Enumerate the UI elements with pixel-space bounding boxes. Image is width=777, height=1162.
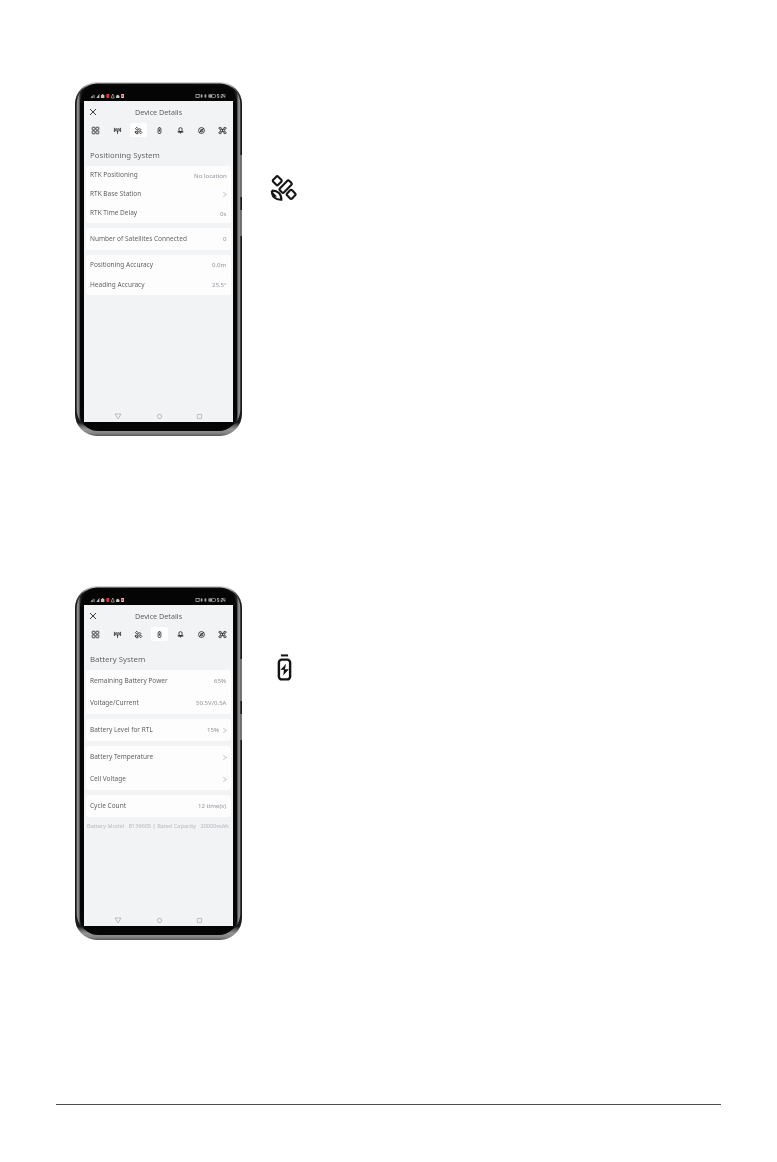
staticText: Battery Temperature	[90, 752, 154, 761]
button[interactable]: Overview	[86, 123, 104, 137]
button[interactable]: Positioning System	[130, 627, 147, 641]
staticText: Battery Level for RTL	[90, 725, 153, 734]
staticText: Battery System	[90, 654, 146, 665]
button[interactable]: Battery	[151, 627, 168, 641]
staticText: RTK Base Station	[90, 189, 142, 198]
staticText: Positioning System	[90, 150, 160, 161]
staticText: Heading Accuracy	[90, 280, 145, 289]
button[interactable]: Battery	[151, 123, 168, 137]
staticText: 25.5°	[212, 280, 227, 288]
button[interactable]: Recents	[192, 914, 206, 926]
staticText: Number of Satellites Connected	[90, 234, 187, 243]
staticText: Voltage/Current	[90, 698, 139, 707]
staticText: 15%	[207, 725, 220, 733]
button[interactable]: Cycle Count	[86, 795, 231, 817]
button[interactable]: Home	[152, 914, 166, 926]
staticText: 0	[223, 234, 227, 242]
staticText: RTK Time Delay	[90, 208, 138, 217]
button[interactable]: Remote Controller	[108, 123, 126, 137]
button[interactable]: RTK Positioning	[86, 166, 231, 185]
button[interactable]: RTK Base Station	[86, 185, 231, 204]
button[interactable]: Battery Temperature	[86, 746, 231, 768]
button[interactable]: Remaining Battery Power	[86, 670, 231, 692]
button[interactable]: Battery Level for RTL	[86, 719, 231, 741]
staticText: Cycle Count	[90, 801, 126, 810]
staticText: 50.5V/0.5A	[196, 698, 227, 706]
button[interactable]: Positioning Accuracy	[86, 255, 231, 275]
staticText: 0.0m	[212, 260, 227, 268]
button[interactable]: Cell Voltage	[86, 768, 231, 790]
staticText: 0s	[220, 209, 227, 217]
button[interactable]: Gimbal	[172, 627, 189, 641]
button[interactable]: Heading Accuracy	[86, 275, 231, 295]
staticText: Device Details	[135, 107, 183, 117]
button[interactable]: Recents	[192, 410, 206, 422]
button[interactable]: Back	[111, 914, 125, 926]
staticText: 65%	[214, 676, 227, 684]
button[interactable]: Vision	[193, 627, 210, 641]
staticText: RTK Positioning	[90, 170, 138, 179]
staticText: Battery Model B13960S | Rated Capacity 2…	[87, 822, 229, 830]
staticText: Positioning Accuracy	[90, 260, 154, 269]
button[interactable]: Sensors	[214, 123, 231, 137]
button[interactable]: Sensors	[214, 627, 231, 641]
staticText: No location	[194, 171, 227, 179]
staticText: Cell Voltage	[90, 774, 126, 783]
button[interactable]: Gimbal	[172, 123, 189, 137]
button[interactable]: Remote Controller	[108, 627, 126, 641]
button[interactable]: Number of Satellites Connected	[86, 228, 231, 250]
staticText: 12 time(s)	[198, 801, 227, 809]
button[interactable]: Close	[87, 106, 99, 118]
button[interactable]: Vision	[193, 123, 210, 137]
staticText: Device Details	[135, 611, 183, 621]
button[interactable]: Close	[87, 610, 99, 622]
button[interactable]: Overview	[86, 627, 104, 641]
button[interactable]: Positioning System	[130, 123, 147, 137]
staticText: Remaining Battery Power	[90, 676, 168, 685]
button[interactable]: Voltage/Current	[86, 692, 231, 714]
button[interactable]: RTK Time Delay	[86, 204, 231, 223]
button[interactable]: Home	[152, 410, 166, 422]
button[interactable]: Back	[111, 410, 125, 422]
